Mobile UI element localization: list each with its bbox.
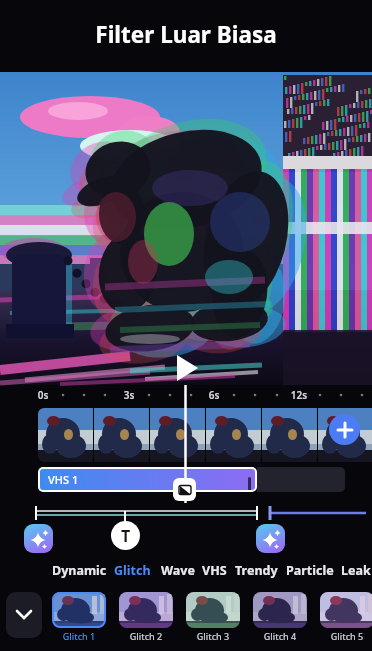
button[interactable] — [170, 352, 202, 384]
button[interactable] — [320, 592, 372, 628]
button[interactable] — [253, 592, 307, 628]
button[interactable]: Particle — [286, 562, 334, 579]
staticText: Glitch 3 — [186, 630, 240, 642]
staticText: VHS 1 — [48, 472, 79, 487]
button[interactable]: Leak — [341, 562, 371, 579]
staticText: 0s — [34, 388, 52, 402]
button[interactable]: Wave — [161, 562, 195, 579]
button[interactable]: Dynamic — [52, 562, 107, 579]
button[interactable] — [256, 524, 285, 553]
staticText: 6s — [205, 388, 223, 402]
staticText: T — [121, 525, 131, 547]
button[interactable] — [119, 592, 173, 628]
button[interactable] — [24, 524, 53, 553]
staticText: Glitch 4 — [253, 630, 307, 642]
button[interactable]: Glitch — [114, 562, 151, 579]
button[interactable]: T — [111, 521, 140, 550]
button[interactable] — [186, 592, 240, 628]
staticText: 3s — [120, 388, 138, 402]
button[interactable] — [173, 478, 196, 501]
button[interactable] — [329, 414, 360, 445]
staticText: Filter Luar Biasa — [0, 19, 372, 50]
staticText: Glitch 5 — [320, 630, 372, 642]
button[interactable]: Trendy — [235, 562, 278, 579]
button[interactable]: VHS 1 — [38, 467, 257, 492]
button[interactable] — [52, 592, 106, 628]
staticText: 12s — [290, 388, 308, 402]
staticText: Glitch 2 — [119, 630, 173, 642]
button[interactable]: VHS — [202, 562, 227, 579]
staticText: Glitch 1 — [52, 630, 106, 642]
button[interactable] — [6, 592, 42, 638]
